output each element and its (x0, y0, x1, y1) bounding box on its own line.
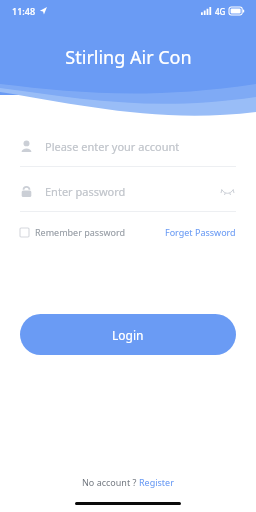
staticText: Remember password (35, 226, 126, 238)
staticText: Forget Password (165, 226, 236, 238)
button[interactable]: Login (20, 314, 236, 355)
staticText: 11:48 (12, 5, 36, 17)
staticText: Please enter your account (45, 139, 180, 154)
button[interactable]: Please enter your account (20, 126, 236, 166)
button[interactable]: Show password (218, 182, 236, 200)
button[interactable]: Register (139, 476, 174, 488)
button[interactable]: Remember password (20, 226, 126, 238)
staticText: No account ? (82, 476, 139, 488)
staticText: 4G (215, 6, 226, 17)
staticText: Login (112, 327, 144, 343)
staticText: Enter password (45, 184, 126, 199)
staticText: Register (139, 476, 174, 488)
button[interactable]: Enter password (20, 171, 236, 211)
staticText: Stirling Air Con (65, 45, 192, 70)
button[interactable]: Forget Password (165, 226, 236, 238)
